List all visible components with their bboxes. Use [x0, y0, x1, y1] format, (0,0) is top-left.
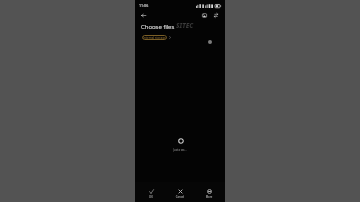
staticText: Just a sec… [135, 148, 225, 152]
button[interactable]: Sort [210, 10, 221, 21]
button[interactable]: Back [137, 9, 149, 21]
staticText: Choose files [141, 22, 175, 30]
button[interactable]: Cancel [167, 182, 193, 202]
staticText: More [196, 195, 222, 199]
staticText: Internal storage [143, 36, 166, 40]
staticText: Cancel [167, 195, 193, 199]
staticText: SITEC [176, 21, 194, 30]
staticText: 11:06 [139, 3, 149, 8]
button[interactable]: Account [207, 39, 212, 44]
button[interactable]: More [196, 182, 222, 202]
button[interactable]: OK [138, 182, 164, 202]
button[interactable]: Internal storage [142, 35, 167, 40]
staticText: OK [138, 195, 164, 199]
button[interactable]: Switch view [199, 10, 210, 21]
